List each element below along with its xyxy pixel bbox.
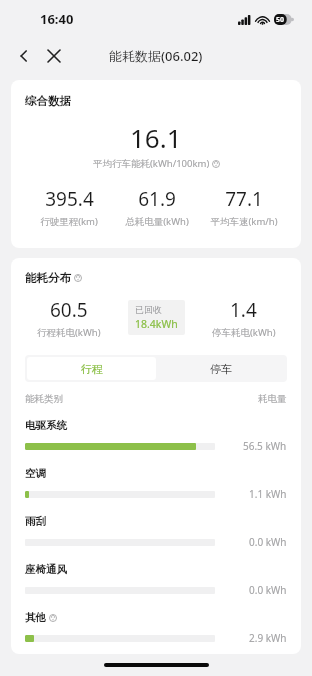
staticText: 能耗类别 (25, 393, 63, 405)
staticText: 行驶里程(km) (40, 215, 98, 228)
staticText: 电驱系统 (25, 419, 67, 432)
button[interactable]: 停车 (156, 357, 285, 380)
staticText: 1.1 kWh (249, 487, 287, 501)
staticText: 56.5 kWh (243, 439, 287, 453)
staticText: 行程 (81, 362, 103, 376)
staticText: 60.5 (50, 297, 88, 323)
staticText: 雨刮 (25, 515, 46, 528)
staticText: 综合数据 (25, 94, 71, 108)
staticText: 395.4 (45, 186, 94, 212)
staticText: 1.4 (230, 297, 257, 323)
button[interactable]: Back (12, 44, 36, 68)
staticText: 能耗数据(06.02) (109, 47, 203, 65)
staticText: 77.1 (225, 186, 263, 212)
staticText: 16.1 (130, 120, 182, 155)
staticText: 16:40 (40, 10, 74, 28)
staticText: 0.0 kWh (249, 583, 287, 597)
staticText: 空调 (25, 467, 46, 480)
staticText: 已回收 (135, 304, 162, 315)
staticText: 行程耗电(kWh) (37, 326, 101, 339)
staticText: 50 (276, 15, 285, 25)
button[interactable]: Close (42, 44, 66, 68)
staticText: 其他 (25, 611, 46, 624)
staticText: 总耗电量(kWh) (125, 215, 189, 228)
staticText: 停车 (210, 362, 232, 376)
staticText: 耗电量 (258, 393, 287, 405)
staticText: 座椅通风 (25, 563, 67, 576)
staticText: 平均车速(km/h) (210, 215, 278, 228)
staticText: 61.9 (138, 186, 176, 212)
staticText: 能耗分布 (25, 271, 71, 285)
button[interactable]: 行程 (27, 357, 156, 380)
staticText: 2.9 kWh (249, 631, 287, 645)
staticText: 0.0 kWh (249, 535, 287, 549)
staticText: 平均行车能耗(kWh/100km) (93, 157, 210, 170)
staticText: 停车耗电(kWh) (212, 326, 276, 339)
staticText: 18.4kWh (135, 317, 178, 331)
